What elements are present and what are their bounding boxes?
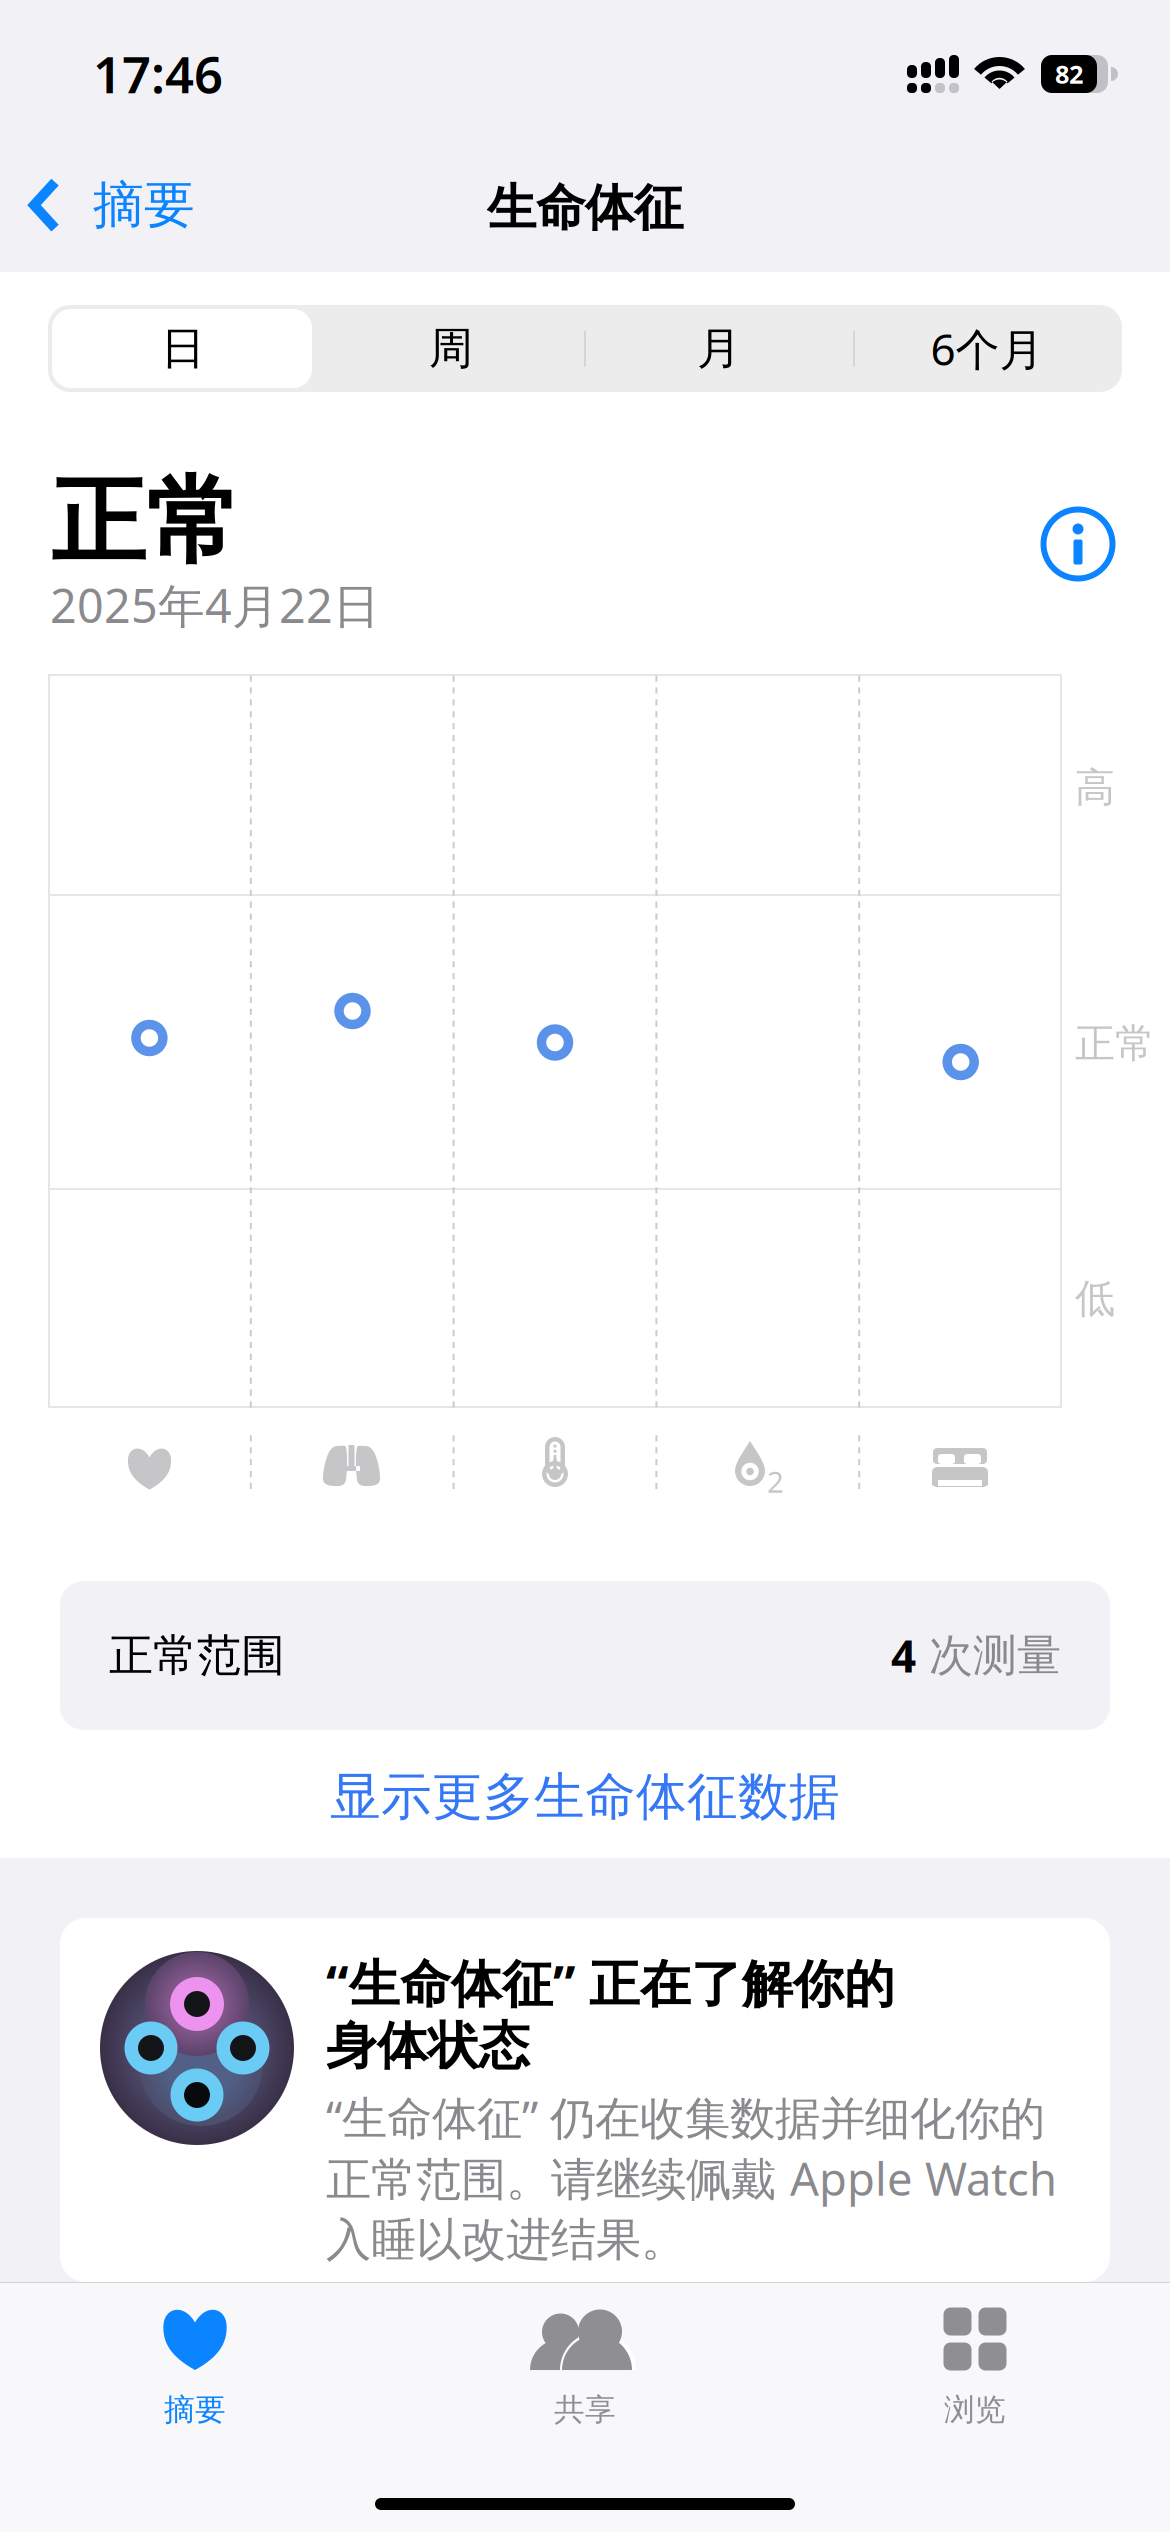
staticText: 共享	[554, 2391, 616, 2429]
staticText: 高	[1075, 763, 1115, 812]
staticText: 82	[1055, 57, 1083, 91]
staticText: 17:46	[93, 40, 223, 107]
staticText: 周	[429, 321, 473, 375]
staticText: 6个月	[930, 319, 1043, 378]
button[interactable]: 摘要	[0, 2306, 390, 2446]
staticText: 浏览	[944, 2391, 1006, 2429]
staticText: 正常范围	[109, 1628, 285, 1682]
button[interactable]: 日	[49, 305, 317, 392]
staticText: 月	[697, 321, 741, 375]
staticText: 正常范围。请继续佩戴 Apple Watch	[326, 2148, 1057, 2208]
button[interactable]: 正常范围	[60, 1581, 1110, 1730]
button[interactable]: 月	[585, 305, 853, 392]
staticText: 入睡以改进结果。	[326, 2212, 686, 2268]
staticText: 次测量	[916, 1628, 1061, 1682]
staticText: 摘要	[93, 174, 195, 236]
staticText: 正常	[1075, 1019, 1155, 1068]
staticText: “生命体征” 正在了解你的	[326, 1949, 895, 2016]
button[interactable]: 浏览	[780, 2306, 1170, 2446]
staticText: 摘要	[164, 2391, 226, 2429]
staticText: 低	[1075, 1274, 1115, 1323]
button[interactable]: 显示更多生命体征数据	[0, 1755, 1170, 1839]
staticText: 身体状态	[326, 2015, 530, 2077]
staticText: 生命体征	[487, 178, 683, 238]
button[interactable]: Info	[1038, 504, 1118, 584]
staticText: “生命体征” 仍在收集数据并细化你的	[326, 2087, 1045, 2147]
button[interactable]: 摘要	[24, 158, 199, 252]
button[interactable]: 共享	[390, 2306, 780, 2446]
staticText: 日	[161, 321, 205, 375]
staticText: 显示更多生命体征数据	[330, 1766, 840, 1828]
staticText: 正常	[51, 464, 241, 580]
staticText: 2	[767, 1462, 784, 1501]
staticText: 4	[891, 1626, 916, 1685]
staticText: 2025年4月22日	[50, 574, 380, 636]
button[interactable]: 周	[317, 305, 585, 392]
button[interactable]: 6个月	[853, 305, 1121, 392]
